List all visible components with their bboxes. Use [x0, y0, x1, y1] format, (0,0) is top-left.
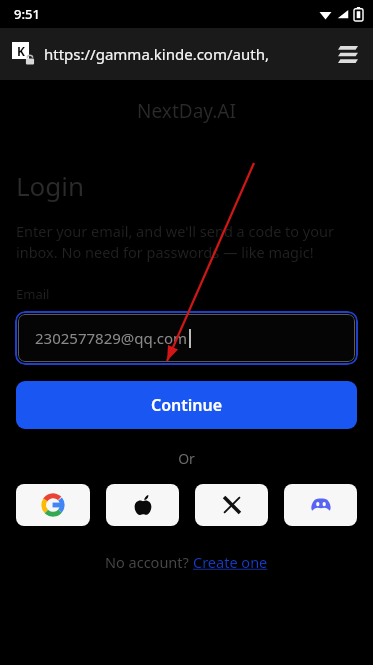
staticText: NextDay.AI [0, 98, 373, 124]
staticText: 2302577829@qq.com [35, 328, 188, 348]
staticText: 9:51 [14, 5, 40, 23]
staticText: https://gamma.kinde.com/auth, [44, 44, 269, 64]
button[interactable]: Sign in with Google [16, 484, 90, 526]
button[interactable]: Sign in with Apple [106, 484, 179, 526]
button[interactable]: Sign in with Discord [284, 484, 357, 526]
button[interactable]: Continue [16, 381, 357, 429]
staticText: Login [16, 168, 85, 203]
staticText: Enter your email, and we'll send a code … [16, 221, 355, 263]
button[interactable]: Menu [331, 37, 365, 71]
button[interactable]: Create one [193, 552, 268, 572]
staticText: Create one [193, 552, 268, 572]
staticText: K [17, 43, 25, 59]
button[interactable]: Sign in with X [195, 484, 268, 526]
staticText: No account? [105, 552, 193, 572]
staticText: Continue [151, 394, 223, 416]
staticText: Email [16, 285, 50, 303]
button[interactable]: 2302577829@qq.com [18, 314, 355, 362]
staticText: Or [0, 449, 373, 468]
